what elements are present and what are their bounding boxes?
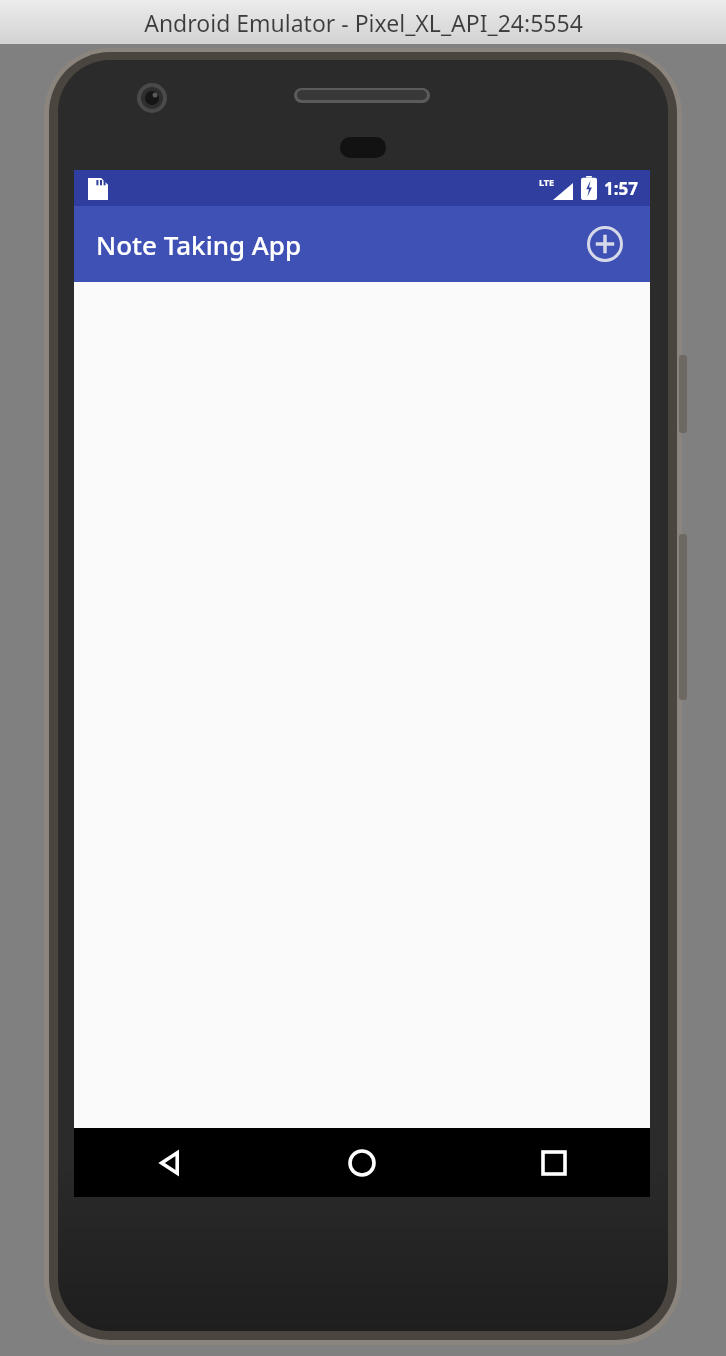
staticText: 1:57: [604, 177, 638, 200]
staticText: LTE: [539, 176, 555, 188]
button[interactable]: Recent apps: [458, 1128, 650, 1197]
button[interactable]: Home: [266, 1128, 458, 1197]
button[interactable]: Add note: [582, 221, 628, 267]
button[interactable]: Back: [74, 1128, 266, 1197]
staticText: Note Taking App: [96, 227, 302, 262]
staticText: Android Emulator - Pixel_XL_API_24:5554: [144, 7, 583, 38]
